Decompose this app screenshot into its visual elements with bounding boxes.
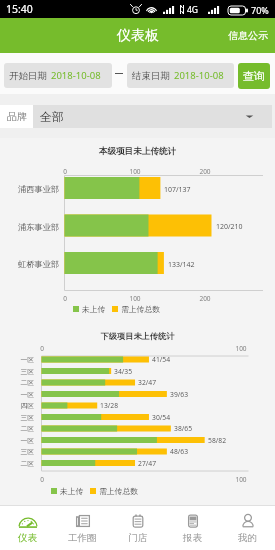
staticText: 我的 — [238, 532, 257, 544]
staticText: 0 — [55, 167, 75, 176]
staticText: 二区 — [8, 378, 34, 387]
staticText: 30/54 — [152, 413, 171, 422]
staticText: 2018-10-08 — [174, 69, 224, 82]
staticText: 38/65 — [174, 424, 193, 433]
staticText: 0 — [55, 294, 75, 303]
staticText: 未上传 — [60, 486, 84, 496]
staticText: 结束日期 — [132, 70, 170, 82]
staticText: 13/28 — [100, 401, 119, 410]
staticText: 58/82 — [208, 436, 227, 445]
staticText: 浦西事业部 — [14, 184, 59, 194]
staticText: 仪表板 — [117, 27, 159, 45]
staticText: 32/47 — [138, 378, 157, 387]
staticText: 开始日期 — [9, 70, 47, 82]
staticText: 70% — [251, 4, 269, 16]
staticText: 100 — [231, 475, 251, 484]
other: 报表 — [183, 513, 203, 529]
staticText: 39/63 — [170, 390, 189, 399]
staticText: 查询 — [243, 69, 265, 83]
button[interactable]: 全部 — [33, 105, 272, 128]
staticText: 100 — [125, 294, 145, 303]
staticText: 200 — [195, 294, 215, 303]
staticText: 4G — [187, 4, 199, 16]
staticText: 需上传总数 — [121, 304, 160, 314]
staticText: 200 — [195, 167, 215, 176]
button[interactable]: 结束日期 — [127, 63, 234, 88]
button[interactable]: 查询 — [238, 63, 270, 89]
staticText: 需上传总数 — [99, 486, 138, 496]
staticText: 41/54 — [152, 355, 171, 364]
staticText: 仪表 — [18, 532, 37, 544]
staticText: 48/63 — [170, 447, 189, 456]
staticText: 0 — [32, 344, 52, 353]
other: 工作圈 — [73, 513, 93, 529]
staticText: 浦东事业部 — [14, 222, 59, 232]
staticText: 120/210 — [216, 222, 243, 232]
button[interactable]: 仪表 — [0, 506, 55, 550]
staticText: 34/35 — [114, 367, 133, 376]
other: 门店 — [128, 513, 148, 529]
staticText: 未上传 — [82, 304, 106, 314]
button[interactable]: 信息公示 — [221, 18, 275, 53]
staticText: 二区 — [8, 424, 34, 433]
button[interactable]: 门店 — [110, 506, 165, 550]
staticText: 二区 — [8, 459, 34, 468]
staticText: 信息公示 — [228, 29, 268, 42]
staticText: 虹桥事业部 — [14, 259, 59, 269]
button[interactable]: 开始日期 — [4, 63, 112, 88]
button[interactable]: 报表 — [165, 506, 220, 550]
staticText: 三区 — [8, 447, 34, 456]
staticText: 一区 — [8, 390, 34, 399]
staticText: 三区 — [8, 367, 34, 376]
staticText: 133/142 — [168, 260, 195, 270]
staticText: 2018-10-08 — [51, 69, 101, 82]
other: 仪表 — [18, 513, 38, 529]
staticText: 一区 — [8, 355, 34, 364]
staticText: 三区 — [8, 413, 34, 422]
staticText: 0 — [32, 475, 52, 484]
staticText: 100 — [125, 167, 145, 176]
button[interactable]: 工作圈 — [55, 506, 110, 550]
staticText: 下级项目未上传统计 — [0, 331, 275, 341]
other: 我的 — [238, 513, 258, 529]
staticText: 本级项目未上传统计 — [0, 146, 275, 157]
staticText: 107/137 — [164, 185, 191, 195]
staticText: 27/47 — [138, 459, 157, 468]
staticText: 工作圈 — [68, 532, 97, 544]
staticText: 四区 — [8, 401, 34, 410]
staticText: 一区 — [8, 436, 34, 445]
staticText: 100 — [231, 344, 251, 353]
staticText: 报表 — [183, 532, 202, 544]
staticText: 全部 — [40, 109, 64, 124]
button[interactable]: 我的 — [220, 506, 275, 550]
staticText: 门店 — [128, 532, 147, 544]
staticText: 15:40 — [6, 2, 33, 16]
staticText: 品牌 — [7, 110, 27, 123]
